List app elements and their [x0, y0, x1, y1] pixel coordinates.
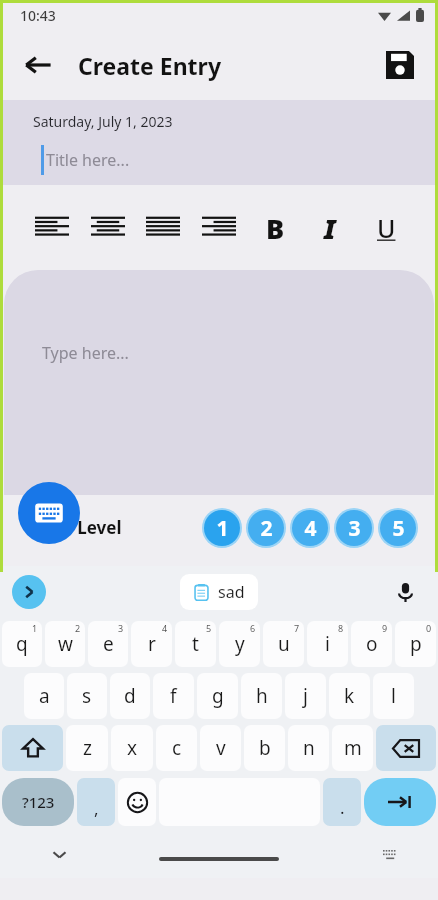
staticText: z — [83, 735, 92, 761]
button[interactable]: 2 — [248, 510, 284, 546]
staticText: . — [340, 796, 345, 819]
button[interactable]: x — [111, 725, 153, 771]
button[interactable]: Enter — [364, 778, 436, 826]
staticText: i — [325, 631, 330, 657]
staticText: B — [266, 210, 285, 247]
button[interactable]: sad — [180, 574, 258, 610]
button[interactable]: Switch keyboard — [376, 839, 406, 869]
button[interactable]: Show keyboard — [18, 482, 80, 544]
button[interactable]: Hide keyboard — [42, 837, 76, 871]
staticText: 4 — [304, 514, 317, 543]
staticText: q — [16, 631, 28, 657]
button[interactable]: Justify — [141, 206, 185, 250]
staticText: s — [82, 683, 92, 709]
button[interactable]: Align center — [86, 206, 130, 250]
button[interactable]: I — [308, 206, 352, 250]
staticText: 9 — [382, 622, 388, 634]
button[interactable]: c — [156, 725, 197, 771]
staticText: 10:43 — [20, 6, 56, 25]
button[interactable]: Shift — [2, 725, 63, 771]
button[interactable]: . — [323, 778, 361, 826]
staticText: b — [259, 735, 271, 761]
button[interactable]: u — [263, 621, 304, 667]
button[interactable]: h — [241, 673, 282, 719]
staticText: l — [391, 683, 396, 709]
staticText: Create Entry — [78, 50, 222, 81]
button[interactable]: 3 — [336, 510, 372, 546]
button[interactable]: z — [66, 725, 108, 771]
staticText: 1 — [216, 514, 229, 543]
button[interactable]: j — [285, 673, 326, 719]
button[interactable]: , — [77, 778, 115, 826]
button[interactable]: y — [219, 621, 260, 667]
staticText: I — [324, 210, 336, 247]
staticText: p — [410, 631, 422, 657]
staticText: Pain Level — [36, 516, 122, 539]
staticText: a — [39, 683, 50, 709]
button[interactable]: f — [153, 673, 194, 719]
button[interactable]: q — [2, 621, 42, 667]
button[interactable]: Emoji — [118, 778, 156, 826]
staticText: 8 — [338, 622, 344, 634]
button[interactable]: m — [332, 725, 373, 771]
button[interactable]: Title here... — [46, 149, 130, 171]
staticText: n — [303, 735, 315, 761]
button[interactable]: 1 — [204, 510, 240, 546]
staticText: t — [192, 631, 199, 657]
button[interactable]: 5 — [380, 510, 416, 546]
button[interactable]: e — [88, 621, 128, 667]
button[interactable]: Save — [376, 41, 424, 89]
button[interactable]: d — [110, 673, 150, 719]
staticText: Saturday, July 1, 2023 — [33, 112, 173, 131]
staticText: u — [278, 631, 290, 657]
button[interactable]: v — [200, 725, 241, 771]
button[interactable]: i — [307, 621, 348, 667]
button[interactable]: B — [253, 206, 297, 250]
staticText: f — [170, 683, 177, 709]
button[interactable]: n — [288, 725, 329, 771]
staticText: 1 — [32, 622, 38, 634]
staticText: 0 — [426, 622, 432, 634]
button[interactable]: ?123 — [2, 778, 74, 826]
staticText: d — [124, 683, 136, 709]
staticText: h — [256, 683, 268, 709]
staticText: e — [103, 631, 114, 657]
staticText: 7 — [294, 622, 300, 634]
staticText: 5 — [392, 514, 405, 543]
button[interactable]: s — [67, 673, 107, 719]
button[interactable]: k — [329, 673, 370, 719]
staticText: U — [377, 211, 396, 245]
staticText: , — [94, 797, 99, 820]
button[interactable]: w — [45, 621, 85, 667]
staticText: 4 — [162, 622, 168, 634]
staticText: r — [148, 631, 156, 657]
button[interactable]: p — [395, 621, 436, 667]
button[interactable]: Back — [14, 41, 62, 89]
button[interactable]: Type here... — [4, 270, 434, 495]
button[interactable]: g — [197, 673, 238, 719]
button[interactable]: Align left — [30, 206, 74, 250]
button[interactable]: r — [131, 621, 172, 667]
staticText: Type here... — [42, 342, 129, 364]
button[interactable]: o — [351, 621, 392, 667]
button[interactable]: Backspace — [376, 725, 436, 771]
button[interactable]: U — [364, 206, 408, 250]
button[interactable]: 4 — [292, 510, 328, 546]
button[interactable]: More suggestions — [12, 575, 46, 609]
staticText: 3 — [118, 622, 124, 634]
button[interactable]: b — [244, 725, 285, 771]
staticText: c — [172, 735, 182, 761]
staticText: sad — [218, 581, 245, 603]
staticText: v — [216, 735, 226, 761]
staticText: 3 — [348, 514, 361, 543]
button[interactable]: a — [24, 673, 64, 719]
button[interactable]: l — [373, 673, 414, 719]
button[interactable]: Voice input — [388, 575, 422, 609]
staticText: g — [212, 683, 224, 709]
button[interactable]: Align right — [197, 206, 241, 250]
staticText: m — [344, 735, 362, 761]
staticText: ?123 — [22, 792, 55, 812]
staticText: y — [235, 631, 245, 657]
button[interactable]: t — [175, 621, 216, 667]
